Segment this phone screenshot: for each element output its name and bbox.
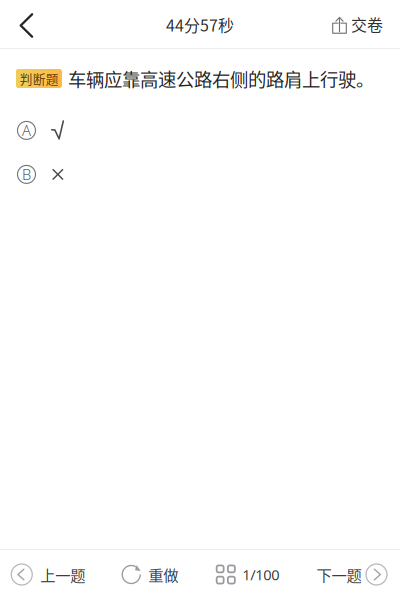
- staticText: 1/100: [242, 565, 279, 584]
- staticText: B: [22, 165, 31, 184]
- staticText: 44分57秒: [166, 13, 234, 36]
- button[interactable]: 重做: [100, 549, 200, 599]
- staticText: 交卷: [351, 12, 383, 36]
- staticText: 车辆应靠高速公路右侧的路肩上行驶。: [68, 65, 374, 92]
- staticText: 下一题: [316, 563, 361, 586]
- staticText: 重做: [148, 563, 178, 586]
- button[interactable]: 1/100: [200, 549, 300, 599]
- staticText: A: [22, 121, 31, 140]
- button[interactable]: 上一题: [0, 549, 100, 599]
- staticText: 判断题: [20, 69, 59, 88]
- staticText: 上一题: [40, 563, 85, 586]
- button[interactable]: Back: [0, 0, 47, 48]
- button[interactable]: 下一题: [300, 549, 400, 599]
- button[interactable]: A: [0, 108, 400, 152]
- button[interactable]: 交卷: [322, 0, 400, 48]
- button[interactable]: B: [0, 152, 400, 196]
